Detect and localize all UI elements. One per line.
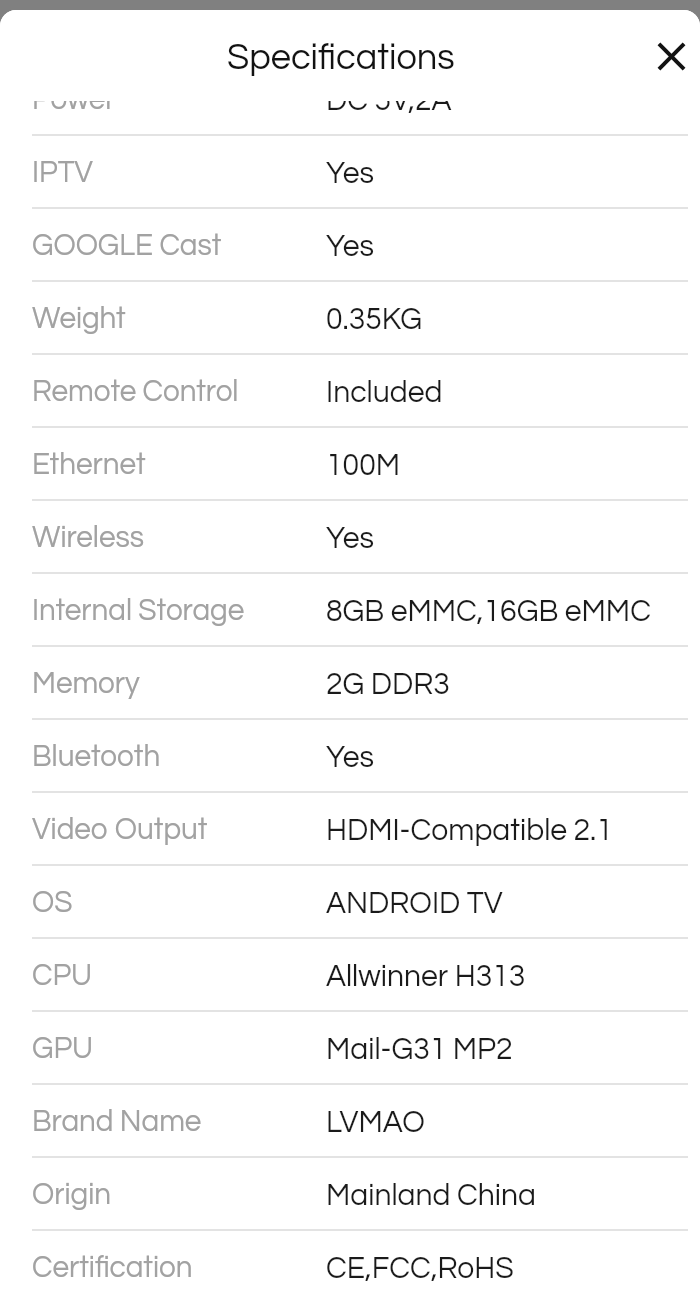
button[interactable]: Internal Storage bbox=[0, 572, 700, 645]
staticText: Yes bbox=[326, 157, 375, 189]
staticText: Included bbox=[326, 376, 443, 408]
button[interactable]: Bluetooth bbox=[0, 718, 700, 791]
button[interactable]: Ethernet bbox=[0, 426, 700, 499]
staticText: Video Output bbox=[32, 813, 208, 846]
staticText: Origin bbox=[32, 1178, 111, 1211]
staticText: OS bbox=[32, 886, 73, 919]
staticText: CPU bbox=[32, 959, 93, 992]
staticText: ANDROID TV bbox=[326, 887, 503, 919]
button[interactable]: GOOGLE Cast bbox=[0, 207, 700, 280]
staticText: Wireless bbox=[32, 521, 144, 554]
button[interactable]: Weight bbox=[0, 280, 700, 353]
staticText: Brand Name bbox=[32, 1105, 202, 1138]
button[interactable]: Remote Control bbox=[0, 353, 700, 426]
staticText: Ethernet bbox=[32, 448, 146, 481]
staticText: GPU bbox=[32, 1032, 94, 1065]
staticText: Specifications bbox=[227, 39, 455, 77]
staticText: Allwinner H313 bbox=[326, 960, 526, 992]
staticText: Mail-G31 MP2 bbox=[326, 1033, 513, 1065]
staticText: 0.35KG bbox=[326, 303, 423, 335]
staticText: DC 5V,2A bbox=[326, 84, 452, 116]
staticText: IPTV bbox=[32, 156, 94, 189]
staticText: Yes bbox=[326, 230, 375, 262]
button[interactable]: Origin bbox=[0, 1156, 700, 1229]
button[interactable]: IPTV bbox=[0, 134, 700, 207]
button[interactable]: Brand Name bbox=[0, 1083, 700, 1156]
staticText: Memory bbox=[32, 667, 140, 700]
staticText: 2G DDR3 bbox=[326, 668, 450, 700]
staticText: Internal Storage bbox=[32, 594, 244, 627]
button[interactable]: Memory bbox=[0, 645, 700, 718]
staticText: HDMI-Compatible 2.1 bbox=[326, 814, 613, 846]
staticText: CE,FCC,RoHS bbox=[326, 1252, 514, 1284]
staticText: Remote Control bbox=[32, 375, 239, 408]
staticText: Weight bbox=[32, 302, 126, 335]
staticText: LVMAO bbox=[326, 1106, 425, 1138]
button[interactable]: Wireless bbox=[0, 499, 700, 572]
button[interactable]: Certification bbox=[0, 1229, 700, 1301]
staticText: Yes bbox=[326, 741, 375, 773]
staticText: 8GB eMMC,16GB eMMC bbox=[326, 595, 651, 627]
staticText: Mainland China bbox=[326, 1179, 536, 1211]
button[interactable]: GPU bbox=[0, 1010, 700, 1083]
staticText: 100M bbox=[326, 449, 401, 481]
button[interactable]: OS bbox=[0, 864, 700, 937]
staticText: Power bbox=[32, 83, 116, 116]
button[interactable]: Power bbox=[0, 61, 700, 134]
staticText: Certification bbox=[32, 1251, 193, 1284]
staticText: GOOGLE Cast bbox=[32, 229, 222, 262]
button[interactable]: Close bbox=[647, 32, 695, 80]
button[interactable]: Video Output bbox=[0, 791, 700, 864]
staticText: Yes bbox=[326, 522, 375, 554]
staticText: Bluetooth bbox=[32, 740, 161, 773]
button[interactable]: CPU bbox=[0, 937, 700, 1010]
